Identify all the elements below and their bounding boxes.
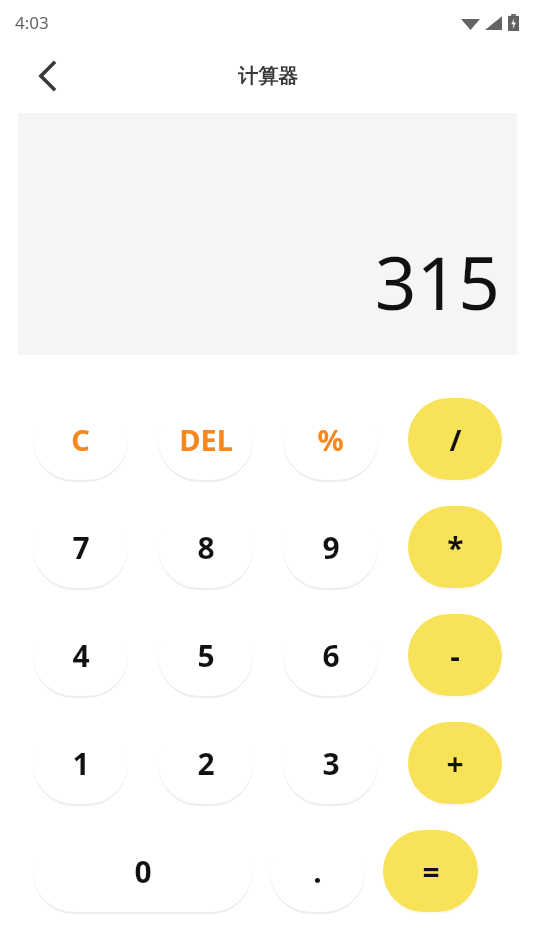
staticText: 4:03: [15, 11, 49, 34]
staticText: 计算器: [238, 64, 298, 89]
staticText: .: [313, 851, 322, 892]
button[interactable]: C: [33, 398, 128, 480]
button[interactable]: 3: [283, 722, 378, 804]
staticText: 315: [374, 232, 500, 331]
staticText: 9: [322, 527, 340, 568]
button[interactable]: 0: [33, 830, 252, 912]
button[interactable]: 5: [158, 614, 253, 696]
button[interactable]: +: [408, 722, 502, 804]
staticText: 8: [197, 527, 215, 568]
button[interactable]: 6: [283, 614, 378, 696]
staticText: *: [447, 527, 464, 568]
staticText: 0: [134, 851, 152, 892]
button[interactable]: *: [408, 506, 502, 588]
staticText: 5: [197, 635, 215, 676]
staticText: 6: [322, 635, 340, 676]
staticText: 7: [72, 527, 90, 568]
button[interactable]: 7: [33, 506, 128, 588]
staticText: %: [317, 420, 344, 459]
staticText: =: [422, 851, 440, 892]
staticText: C: [71, 420, 90, 459]
button[interactable]: .: [270, 830, 365, 912]
staticText: /: [449, 420, 462, 459]
staticText: -: [450, 635, 460, 676]
button[interactable]: 2: [158, 722, 253, 804]
staticText: 4: [72, 635, 90, 676]
button[interactable]: DEL: [158, 398, 253, 480]
button[interactable]: 9: [283, 506, 378, 588]
button[interactable]: 1: [33, 722, 128, 804]
button[interactable]: 8: [158, 506, 253, 588]
button[interactable]: %: [283, 398, 378, 480]
button[interactable]: Back: [22, 51, 72, 101]
button[interactable]: =: [383, 830, 478, 912]
button[interactable]: -: [408, 614, 502, 696]
staticText: 1: [72, 743, 90, 784]
staticText: 2: [197, 743, 215, 784]
button[interactable]: 4: [33, 614, 128, 696]
staticText: 3: [322, 743, 340, 784]
staticText: DEL: [179, 420, 233, 459]
button[interactable]: /: [408, 398, 502, 480]
staticText: +: [446, 743, 464, 784]
